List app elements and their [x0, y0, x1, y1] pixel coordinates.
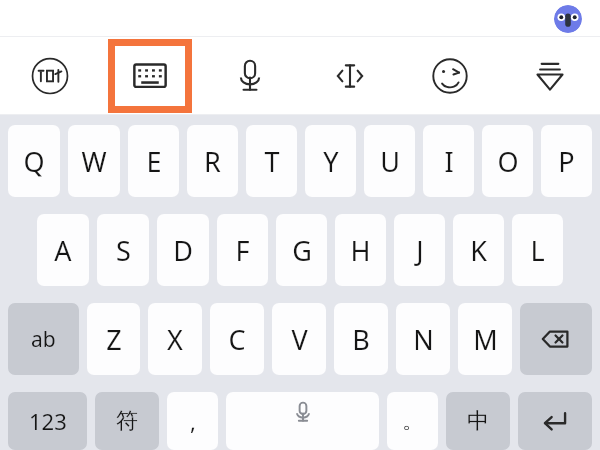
button[interactable]: 符	[95, 392, 159, 450]
button[interactable]: M	[458, 303, 512, 375]
staticText: M	[473, 321, 498, 358]
staticText: J	[416, 232, 424, 269]
staticText: B	[352, 321, 370, 358]
button[interactable]: W	[68, 125, 120, 197]
staticText: R	[204, 143, 221, 180]
button[interactable]: Z	[87, 303, 140, 375]
button[interactable]: V	[272, 303, 326, 375]
staticText: L	[530, 232, 545, 269]
button[interactable]: B	[334, 303, 388, 375]
staticText: N	[413, 321, 434, 358]
button[interactable]: Keyboard layout	[115, 46, 185, 106]
button[interactable]: J	[394, 214, 445, 286]
button[interactable]: Input method	[0, 37, 100, 115]
staticText: ,	[190, 406, 196, 436]
button[interactable]: Hide keyboard	[500, 37, 600, 115]
staticText: Q	[23, 143, 45, 180]
button[interactable]: N	[396, 303, 450, 375]
button[interactable]: T	[246, 125, 297, 197]
button[interactable]: ,	[167, 392, 218, 450]
button[interactable]: F	[217, 214, 268, 286]
staticText: 符	[116, 407, 138, 435]
button[interactable]: Voice input	[200, 37, 300, 115]
button[interactable]: Enter	[518, 392, 592, 450]
staticText: ab	[31, 325, 56, 354]
staticText: S	[116, 232, 131, 269]
button[interactable]: Delete	[520, 303, 592, 375]
staticText: I	[444, 143, 454, 180]
button[interactable]: A	[37, 214, 89, 286]
button[interactable]: C	[210, 303, 264, 375]
staticText: X	[167, 321, 183, 358]
staticText: G	[292, 232, 312, 269]
button[interactable]: G	[276, 214, 327, 286]
button[interactable]: Move cursor	[300, 37, 400, 115]
button[interactable]: E	[128, 125, 179, 197]
staticText: E	[146, 143, 162, 180]
button[interactable]: D	[157, 214, 209, 286]
staticText: Y	[323, 143, 339, 180]
button[interactable]: Q	[8, 125, 60, 197]
staticText: 中	[467, 407, 489, 435]
button[interactable]: 123	[8, 392, 87, 450]
staticText: Z	[106, 321, 122, 358]
button[interactable]: 中	[446, 392, 510, 450]
staticText: T	[264, 143, 280, 180]
button[interactable]: I	[423, 125, 474, 197]
staticText: C	[228, 321, 246, 358]
staticText: K	[470, 232, 487, 269]
button[interactable]: K	[453, 214, 504, 286]
staticText: V	[291, 321, 308, 358]
button[interactable]: Account avatar	[554, 5, 582, 33]
button[interactable]: S	[97, 214, 149, 286]
staticText: U	[380, 143, 400, 180]
button[interactable]: L	[512, 214, 563, 286]
button[interactable]: Y	[305, 125, 356, 197]
staticText: 。	[402, 407, 424, 435]
staticText: P	[558, 143, 575, 180]
button[interactable]: O	[482, 125, 533, 197]
staticText: A	[54, 232, 72, 269]
button[interactable]: 。	[387, 392, 438, 450]
staticText: W	[81, 143, 107, 180]
staticText: F	[235, 232, 250, 269]
staticText: 123	[29, 406, 67, 436]
staticText: O	[497, 143, 519, 180]
button[interactable]: R	[187, 125, 238, 197]
button[interactable]: P	[541, 125, 592, 197]
button[interactable]: ab	[8, 303, 79, 375]
button[interactable]: Emoji	[400, 37, 500, 115]
button[interactable]: X	[148, 303, 202, 375]
button[interactable]: Space, voice input	[226, 392, 379, 450]
staticText: D	[173, 232, 193, 269]
button[interactable]: U	[364, 125, 415, 197]
staticText: H	[350, 232, 371, 269]
button[interactable]: H	[335, 214, 386, 286]
